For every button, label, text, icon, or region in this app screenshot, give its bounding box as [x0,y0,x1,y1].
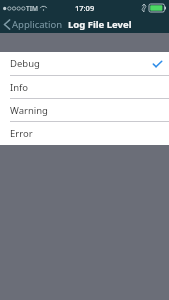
button[interactable]: Application [0,16,65,33]
button[interactable]: Error [0,121,169,144]
button[interactable]: Debug [0,52,169,75]
staticText: TIM [26,4,38,13]
button[interactable]: Warning [0,98,169,121]
staticText: Application [12,18,63,31]
staticText: Log File Level [68,18,132,31]
staticText: Warning [10,104,48,117]
staticText: 17:09 [75,3,95,13]
staticText: Info [10,81,29,94]
button[interactable]: Info [0,75,169,98]
staticText: Debug [10,57,40,70]
staticText: Error [10,127,33,140]
